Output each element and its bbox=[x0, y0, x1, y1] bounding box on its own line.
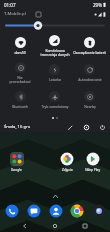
staticText: T-Mobile.pl bbox=[4, 11, 26, 17]
button[interactable]: Brightness bbox=[5, 19, 105, 31]
button[interactable]: Back bbox=[20, 221, 30, 231]
button[interactable]: Latarka bbox=[37, 59, 72, 86]
button[interactable]: Edit bbox=[66, 123, 74, 131]
staticText: Bluetooth bbox=[12, 104, 28, 109]
staticText: Tryb samolotowy bbox=[41, 104, 69, 109]
staticText: Nie przeszkadzać bbox=[9, 75, 31, 84]
staticText: Google bbox=[11, 168, 22, 172]
button[interactable]: Sklep Play bbox=[80, 152, 106, 172]
staticText: Autoobracanie bbox=[78, 77, 102, 82]
button[interactable]: Phone bbox=[3, 202, 20, 219]
button[interactable]: Contacts bbox=[47, 202, 64, 219]
button[interactable]: Power bbox=[98, 123, 106, 131]
staticText: 01:07 bbox=[4, 2, 16, 8]
staticText: 29% bbox=[93, 2, 102, 8]
button[interactable]: Komórkowa transmisja danych bbox=[37, 32, 72, 59]
button[interactable]: Nearby bbox=[72, 86, 107, 113]
button[interactable]: Camera bbox=[90, 202, 107, 219]
button[interactable]: Home bbox=[50, 221, 60, 231]
staticText: Latarka bbox=[49, 77, 61, 82]
button[interactable]: Zdjęcia bbox=[54, 152, 80, 172]
button[interactable]: Messages bbox=[25, 202, 42, 219]
staticText: Sklep Play bbox=[85, 168, 101, 172]
button[interactable]: Google bbox=[4, 152, 29, 172]
button[interactable]: Nie przeszkadzać bbox=[3, 59, 37, 86]
button[interactable]: dom50 bbox=[3, 32, 37, 59]
staticText: dom50 bbox=[14, 50, 26, 55]
button[interactable]: Chrome bbox=[68, 202, 85, 219]
staticText: Środa, 16 gru bbox=[4, 124, 31, 130]
button[interactable]: Settings bbox=[82, 123, 90, 131]
staticText: Komórkowa transmisja danych bbox=[40, 48, 70, 57]
staticText: Zdjęcia bbox=[62, 168, 73, 172]
button[interactable]: Autoobracanie bbox=[72, 59, 107, 86]
button[interactable]: Oszczędzanie baterii bbox=[72, 32, 107, 59]
staticText: Nearby bbox=[84, 104, 96, 109]
staticText: Oszczędzanie baterii bbox=[73, 50, 106, 55]
button[interactable]: Tryb samolotowy bbox=[37, 86, 72, 113]
button[interactable]: Bluetooth bbox=[3, 86, 37, 113]
button[interactable]: Recents bbox=[80, 221, 90, 231]
button[interactable]: Screenshot bbox=[35, 11, 42, 18]
